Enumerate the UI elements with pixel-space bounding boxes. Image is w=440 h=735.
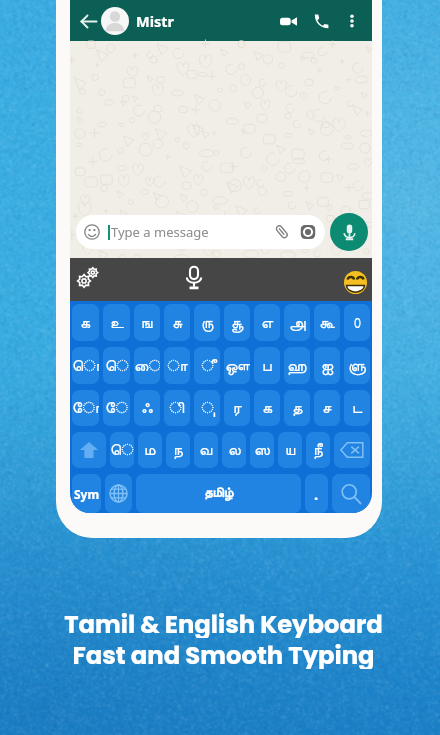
- staticText: ரு: [201, 315, 214, 331]
- staticText: ி: [169, 400, 185, 416]
- staticText: ோ: [72, 400, 99, 416]
- button[interactable]: ா: [164, 347, 190, 384]
- staticText: Tamil & English Keyboard: [64, 607, 383, 638]
- staticText: Type a message: [111, 223, 209, 241]
- button[interactable]: ே: [103, 390, 130, 426]
- button[interactable]: [332, 474, 370, 513]
- staticText: கூ: [319, 315, 335, 331]
- button[interactable]: க: [72, 304, 99, 341]
- button[interactable]: Camera: [300, 224, 316, 240]
- button[interactable]: More options: [341, 10, 363, 32]
- button[interactable]: Emoji: [344, 271, 367, 294]
- button[interactable]: ஐ: [314, 347, 340, 384]
- button[interactable]: Back: [76, 9, 100, 33]
- staticText: சு: [172, 315, 183, 331]
- button[interactable]: ர: [224, 390, 250, 426]
- button[interactable]: த: [284, 390, 310, 426]
- button[interactable]: ப: [254, 347, 280, 384]
- staticText: Mistr: [136, 11, 175, 31]
- button[interactable]: ல: [222, 432, 246, 468]
- staticText: ளு: [348, 358, 366, 374]
- staticText: க: [80, 315, 91, 331]
- button[interactable]: Keyboard settings: [76, 265, 100, 289]
- staticText: ஔ: [225, 358, 250, 374]
- staticText: அ: [289, 315, 306, 331]
- button[interactable]: க: [254, 390, 280, 426]
- staticText: ே: [105, 400, 129, 416]
- staticText: ு: [201, 400, 214, 416]
- button[interactable]: ந: [166, 432, 190, 468]
- button[interactable]: கூ: [314, 304, 340, 341]
- button[interactable]: ீ: [194, 347, 220, 384]
- button[interactable]: ளு: [344, 347, 370, 384]
- button[interactable]: ௌ: [110, 432, 134, 468]
- button[interactable]: ஔ: [224, 347, 250, 384]
- button[interactable]: சு: [164, 304, 190, 341]
- button[interactable]: நீ: [306, 432, 330, 468]
- button[interactable]: ி: [164, 390, 190, 426]
- button[interactable]: ச: [314, 390, 340, 426]
- staticText: வ: [199, 442, 213, 458]
- button[interactable]: உ: [103, 304, 130, 341]
- staticText: உ: [110, 315, 124, 331]
- button[interactable]: வ: [194, 432, 218, 468]
- staticText: ௌ: [110, 442, 134, 458]
- staticText: ர: [233, 400, 242, 416]
- button[interactable]: ங: [134, 304, 160, 341]
- staticText: ை: [134, 358, 160, 374]
- button[interactable]: ய: [278, 432, 302, 468]
- button[interactable]: எ: [254, 304, 280, 341]
- staticText: தமிழ்: [204, 487, 234, 500]
- staticText: ப: [262, 358, 272, 374]
- button[interactable]: ஹ: [284, 347, 310, 384]
- button[interactable]: Contact photo: [101, 7, 129, 35]
- staticText: ா: [167, 358, 188, 374]
- staticText: ஹ: [287, 358, 307, 374]
- button[interactable]: Type a message: [76, 215, 325, 249]
- button[interactable]: ௦: [344, 304, 370, 341]
- staticText: .: [314, 484, 319, 504]
- staticText: க: [262, 400, 273, 416]
- button[interactable]: ரு: [194, 304, 220, 341]
- staticText: ெ: [105, 358, 129, 374]
- staticText: சூ: [231, 315, 244, 331]
- staticText: ச: [322, 400, 332, 416]
- button[interactable]: [334, 432, 370, 468]
- staticText: Sym: [74, 486, 100, 502]
- button[interactable]: Voice input: [181, 264, 207, 290]
- staticText: ௦: [353, 315, 361, 331]
- staticText: ொ: [72, 358, 99, 374]
- staticText: எ: [261, 315, 274, 331]
- button[interactable]: அ: [284, 304, 310, 341]
- button[interactable]: தமிழ்: [136, 474, 301, 513]
- button[interactable]: [105, 474, 132, 513]
- staticText: ம: [144, 442, 156, 458]
- button[interactable]: ெ: [103, 347, 130, 384]
- button[interactable]: ு: [194, 390, 220, 426]
- button[interactable]: Attach: [274, 224, 290, 240]
- button[interactable]: சூ: [224, 304, 250, 341]
- staticText: ய: [285, 442, 296, 458]
- button[interactable]: ோ: [72, 390, 99, 426]
- button[interactable]: Call: [310, 9, 334, 33]
- staticText: த: [292, 400, 303, 416]
- button[interactable]: Sym: [72, 474, 101, 513]
- button[interactable]: ட: [344, 390, 370, 426]
- button[interactable]: .: [305, 474, 328, 513]
- staticText: ஐ: [321, 358, 334, 374]
- staticText: ஸ: [254, 442, 270, 458]
- staticText: ந: [173, 442, 183, 458]
- staticText: நீ: [313, 442, 323, 458]
- button[interactable]: ம: [138, 432, 162, 468]
- staticText: Fast and Smooth Typing: [72, 638, 375, 669]
- button[interactable]: Video call: [276, 9, 300, 33]
- button[interactable]: [72, 432, 106, 468]
- staticText: ங: [141, 315, 153, 331]
- staticText: ீ: [201, 358, 214, 374]
- button[interactable]: ஃ: [134, 390, 160, 426]
- button[interactable]: ொ: [72, 347, 99, 384]
- staticText: ட: [352, 400, 363, 416]
- button[interactable]: ை: [134, 347, 160, 384]
- button[interactable]: Voice message: [330, 213, 368, 251]
- button[interactable]: ஸ: [250, 432, 274, 468]
